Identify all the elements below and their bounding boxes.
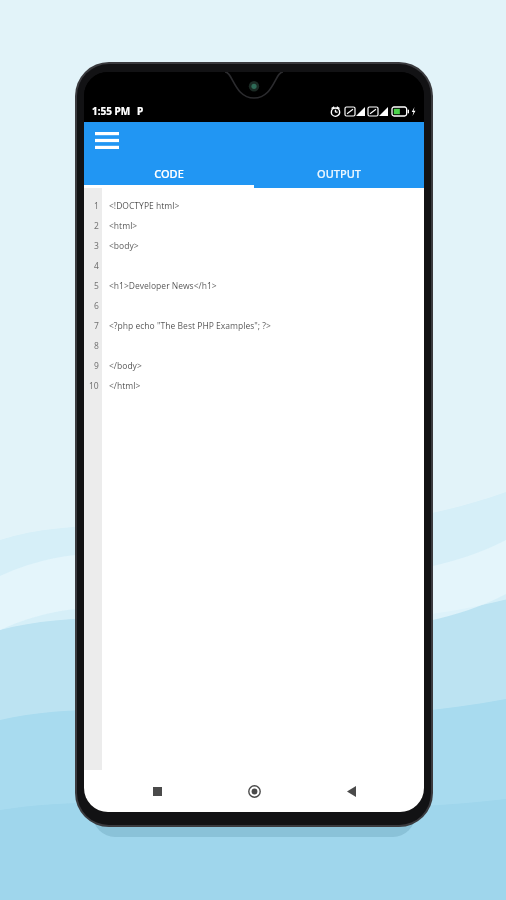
staticText: <!DOCTYPE html> [109, 200, 180, 212]
staticText: 1:55 PM [92, 104, 131, 118]
staticText: 5 [94, 280, 99, 292]
button[interactable]: Recent apps [140, 774, 174, 808]
staticText: <body> [109, 240, 139, 252]
button[interactable]: CODE [84, 158, 254, 188]
staticText: 10 [89, 380, 99, 392]
button[interactable]: Back [334, 774, 368, 808]
staticText: 6 [94, 300, 99, 312]
staticText: </html> [109, 380, 141, 392]
staticText: <h1>Developer News</h1> [109, 280, 217, 292]
staticText: 9 [94, 360, 99, 372]
staticText: 2 [94, 220, 99, 232]
staticText: CODE [154, 166, 184, 181]
staticText: 8 [94, 340, 99, 352]
staticText: 7 [94, 320, 99, 332]
button[interactable]: Open navigation menu [84, 122, 130, 158]
staticText: <html> [109, 220, 138, 232]
button[interactable]: OUTPUT [254, 158, 424, 188]
staticText: </body> [109, 360, 142, 372]
staticText: 4 [94, 260, 99, 272]
button[interactable]: Home [237, 774, 271, 808]
staticText: P [137, 104, 144, 118]
staticText: 3 [94, 240, 99, 252]
staticText: <?php echo "The Best PHP Examples"; ?> [109, 320, 271, 332]
staticText: 1 [94, 200, 99, 212]
staticText: OUTPUT [317, 166, 361, 181]
